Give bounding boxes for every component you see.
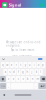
button[interactable]: s [8, 69, 12, 75]
button[interactable]: ?123 [0, 83, 6, 89]
button[interactable]: Backspace [40, 76, 46, 82]
staticText: d [13, 70, 15, 74]
staticText: Tap to learn more. [10, 48, 35, 52]
button[interactable]: c [16, 76, 20, 82]
button[interactable]: p [41, 62, 45, 68]
button[interactable]: d [12, 69, 16, 75]
staticText: z [8, 77, 9, 81]
button[interactable]: t [19, 62, 23, 68]
button[interactable]: Period [34, 83, 38, 89]
button[interactable]: w [5, 62, 9, 68]
button[interactable]: b [26, 76, 30, 82]
staticText: o [38, 63, 40, 67]
staticText: u [29, 63, 31, 67]
staticText: b [27, 77, 29, 81]
staticText: c [18, 77, 19, 81]
staticText: k [36, 70, 37, 74]
staticText: v [22, 77, 23, 81]
staticText: f [18, 70, 19, 74]
button[interactable]: Comma [7, 83, 10, 89]
staticText: e [11, 63, 13, 67]
button[interactable]: m [35, 76, 40, 82]
staticText: Messages are end-to-end encrypted. [5, 40, 40, 48]
staticText: a [5, 70, 6, 74]
button[interactable]: h [25, 69, 29, 75]
button[interactable]: Suggestion [38, 58, 42, 60]
button[interactable]: a [3, 69, 7, 75]
staticText: x [13, 77, 14, 81]
staticText: w [6, 63, 8, 67]
staticText: j [31, 70, 32, 74]
button[interactable]: i [32, 62, 36, 68]
button[interactable]: Shift [0, 76, 6, 82]
button[interactable]: z [6, 76, 11, 82]
staticText: l [40, 70, 41, 74]
button[interactable]: App icon [2, 2, 8, 8]
button[interactable]: k [34, 69, 38, 75]
button[interactable]: o [37, 62, 41, 68]
staticText: , [8, 84, 9, 88]
staticText: p [42, 63, 44, 67]
button[interactable]: f [17, 69, 20, 75]
staticText: y [25, 63, 26, 67]
button[interactable]: Profile [41, 3, 44, 7]
button[interactable]: Return [38, 83, 46, 89]
button[interactable]: g [21, 69, 25, 75]
staticText: i [34, 63, 35, 67]
button[interactable]: j [30, 69, 34, 75]
button[interactable]: q [1, 62, 5, 68]
staticText: q [2, 63, 4, 67]
staticText: t [20, 63, 21, 67]
staticText: Type a message… [12, 54, 34, 58]
button[interactable]: y [23, 62, 27, 68]
button[interactable]: n [30, 76, 35, 82]
staticText: n [32, 77, 34, 81]
staticText: m [36, 77, 38, 81]
button[interactable]: u [28, 62, 32, 68]
staticText: g [22, 70, 24, 74]
button[interactable]: l [39, 69, 43, 75]
staticText: s [9, 70, 10, 74]
button[interactable]: x [11, 76, 15, 82]
button[interactable]: r [14, 62, 18, 68]
staticText: ?123 [1, 85, 5, 87]
button[interactable]: e [10, 62, 14, 68]
button[interactable]: v [21, 76, 25, 82]
staticText: Signal [9, 2, 21, 8]
staticText: h [26, 70, 28, 74]
staticText: r [16, 63, 17, 67]
button[interactable]: Collapse keyboard [0, 56, 7, 62]
